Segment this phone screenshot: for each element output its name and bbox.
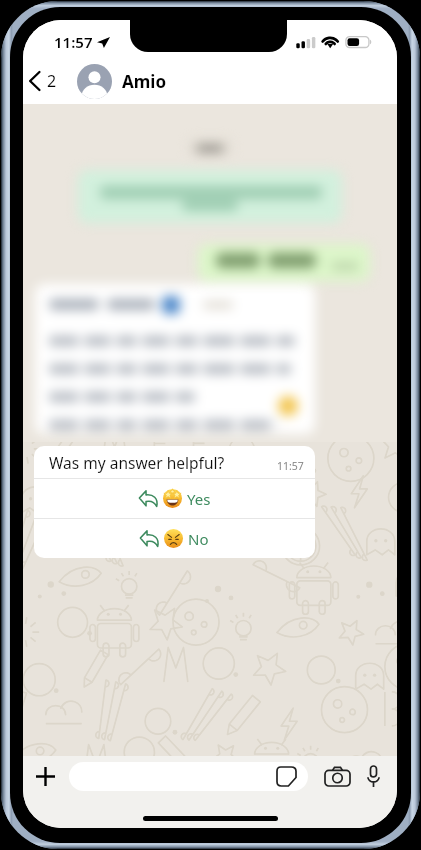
staticText: 11:57 [277, 459, 304, 473]
button[interactable]: Voice message [355, 758, 391, 794]
other: Sticker [277, 767, 296, 786]
staticText: No [188, 529, 209, 549]
button[interactable]: Yes [34, 479, 315, 518]
button[interactable]: Back [23, 70, 60, 92]
staticText: Was my answer helpful? [49, 452, 225, 473]
other: Location active [97, 37, 110, 48]
button[interactable]: Attach [27, 758, 63, 794]
button[interactable]: Camera [319, 758, 355, 794]
other: Back [29, 72, 40, 90]
staticText: 2 [47, 70, 57, 92]
staticText: Amio [122, 70, 167, 93]
button[interactable]: No [34, 519, 315, 558]
button[interactable]: Sticker [69, 762, 308, 791]
staticText: Yes [187, 489, 211, 509]
button[interactable]: Amio [77, 64, 167, 99]
staticText: 11:57 [54, 32, 93, 52]
